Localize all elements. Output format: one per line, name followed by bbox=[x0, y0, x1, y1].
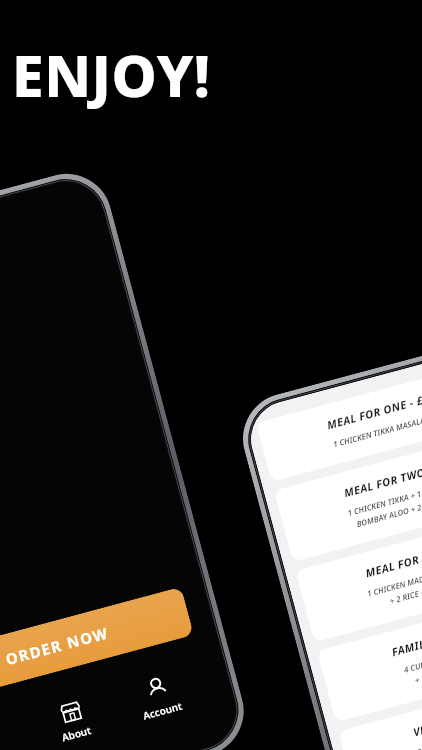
staticText: MEAL FOR ONE - £12.95 bbox=[325, 384, 422, 432]
button[interactable]: MEAL FOR TWO - £24.95 bbox=[295, 502, 422, 642]
staticText: BOMBAY ALOO + 2 RICE + 1 NAAN bbox=[355, 487, 422, 529]
staticText: 4 CURRIES + 4 RICE + 2 NAAN bbox=[402, 637, 422, 675]
staticText: VEGGIE MEAL - £16.95 bbox=[411, 694, 422, 739]
staticText: FAMILY MEAL - £39.95 bbox=[390, 614, 422, 659]
staticText: ENJOY! bbox=[12, 36, 211, 114]
staticText: ORDER NOW bbox=[3, 622, 111, 669]
staticText: About bbox=[60, 723, 93, 744]
staticText: Account bbox=[141, 699, 184, 723]
staticText: + 2 SIDES + POPPADOMS bbox=[413, 651, 422, 685]
button[interactable]: VEGGIE MEAL - £16.95 bbox=[338, 663, 422, 750]
button[interactable]: MEAL FOR TWO - £19.95 bbox=[274, 422, 422, 562]
button[interactable]: FAMILY MEAL - £39.95 bbox=[317, 583, 422, 722]
staticText: 1 CHICKEN MADRAS + 1 LAMB ROGAN bbox=[365, 552, 422, 599]
button[interactable]: About bbox=[42, 689, 103, 750]
staticText: 1 CHICKEN TIKKA MASALA + 1 RICE bbox=[331, 406, 422, 449]
button[interactable]: ORDER NOW bbox=[0, 587, 194, 705]
staticText: 1 CHICKEN TIKKA + 1 LAMB BHUNA + bbox=[346, 473, 422, 518]
staticText: 2 VEG CURRIES + 2 RICE + 1 NAAN bbox=[416, 715, 422, 750]
staticText: + 2 RICE + 2 NAAN + 1 SIDE bbox=[388, 570, 422, 606]
button[interactable]: Account bbox=[123, 665, 194, 729]
button[interactable]: MEAL FOR ONE - £12.95 bbox=[256, 355, 422, 482]
staticText: MEAL FOR TWO - £24.95 bbox=[363, 532, 422, 580]
staticText: MEAL FOR TWO - £19.95 bbox=[342, 452, 422, 500]
